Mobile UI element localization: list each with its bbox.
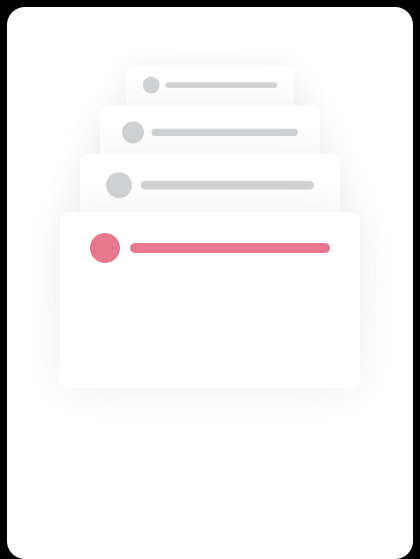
button[interactable]: Message 1 [60, 212, 360, 388]
button[interactable]: Message 2 [80, 154, 340, 306]
button[interactable]: Message 4 [126, 65, 294, 164]
button[interactable]: Message 3 [100, 106, 320, 235]
